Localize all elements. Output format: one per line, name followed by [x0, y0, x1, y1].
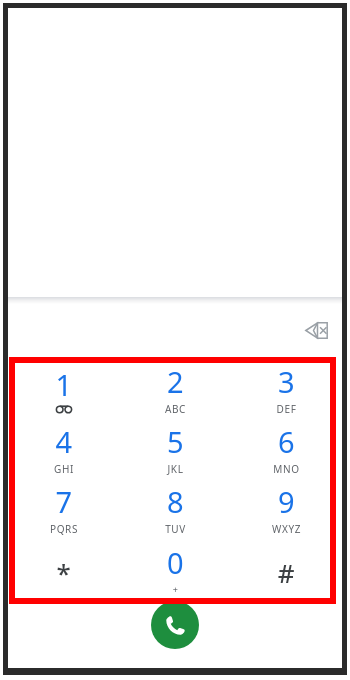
staticText: #	[231, 555, 342, 590]
staticText: 8	[120, 482, 231, 521]
button[interactable]: 3	[231, 356, 342, 416]
button[interactable]: *	[8, 536, 120, 596]
staticText: 1	[8, 365, 120, 404]
button[interactable]: Backspace	[296, 310, 336, 350]
staticText: 0	[120, 543, 231, 582]
button[interactable]: 2	[120, 356, 231, 416]
button[interactable]: 0	[120, 536, 231, 596]
staticText: 6	[231, 422, 342, 461]
button[interactable]: 6	[231, 416, 342, 476]
button[interactable]: 4	[8, 416, 120, 476]
staticText: JKL	[120, 462, 231, 476]
staticText: 3	[231, 362, 342, 401]
staticText: *	[8, 555, 120, 590]
staticText: +	[120, 583, 231, 595]
staticText: 2	[120, 362, 231, 401]
staticText: 5	[120, 422, 231, 461]
staticText: WXYZ	[231, 522, 342, 536]
staticText: TUV	[120, 522, 231, 536]
button[interactable]: 7	[8, 476, 120, 536]
staticText: ABC	[120, 402, 231, 416]
button[interactable]: #	[231, 536, 342, 596]
staticText: 9	[231, 482, 342, 521]
button[interactable]: Call	[151, 601, 199, 649]
staticText: GHI	[8, 462, 120, 476]
staticText: 4	[8, 422, 120, 461]
staticText: 7	[8, 482, 120, 521]
button[interactable]: 1	[8, 356, 120, 416]
staticText: PQRS	[8, 522, 120, 536]
button[interactable]: 8	[120, 476, 231, 536]
staticText: MNO	[231, 462, 342, 476]
button[interactable]: 5	[120, 416, 231, 476]
button[interactable]: 9	[231, 476, 342, 536]
staticText: DEF	[231, 402, 342, 416]
